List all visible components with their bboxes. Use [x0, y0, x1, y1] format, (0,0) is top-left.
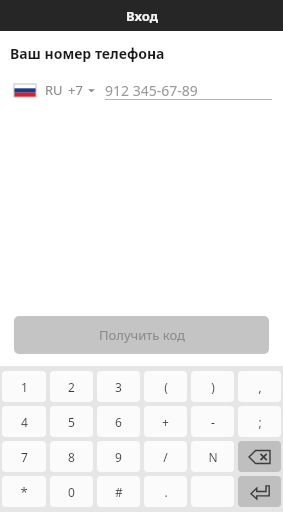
staticText: ,: [258, 378, 262, 396]
staticText: 1: [21, 379, 28, 395]
staticText: 5: [68, 414, 75, 430]
button[interactable]: 0: [50, 476, 93, 507]
staticText: +7: [68, 81, 83, 99]
staticText: 2: [68, 379, 75, 395]
button[interactable]: 9: [97, 441, 140, 472]
button[interactable]: 3: [97, 371, 140, 402]
button[interactable]: 1: [2, 371, 46, 402]
button[interactable]: 8: [50, 441, 93, 472]
button[interactable]: Получить код: [14, 316, 269, 354]
button[interactable]: .: [144, 476, 187, 507]
button[interactable]: *: [2, 476, 46, 507]
button[interactable]: ,: [238, 371, 281, 402]
button[interactable]: ): [191, 371, 234, 402]
staticText: 7: [21, 449, 28, 465]
button[interactable]: #: [97, 476, 140, 507]
staticText: 912 345-67-89: [105, 81, 198, 100]
button[interactable]: 5: [50, 406, 93, 437]
button[interactable]: RU: [14, 81, 97, 99]
staticText: /: [163, 449, 168, 465]
staticText: RU: [45, 81, 63, 99]
staticText: 8: [68, 449, 75, 465]
button[interactable]: Backspace: [238, 441, 281, 472]
button[interactable]: /: [144, 441, 187, 472]
staticText: ): [211, 379, 215, 395]
staticText: Получить код: [99, 326, 185, 344]
staticText: *: [20, 483, 28, 501]
button[interactable]: Enter: [238, 476, 281, 507]
staticText: -: [211, 414, 215, 430]
button[interactable]: ;: [238, 406, 281, 437]
staticText: 9: [115, 449, 122, 465]
button[interactable]: 2: [50, 371, 93, 402]
button[interactable]: -: [191, 406, 234, 437]
staticText: Вход: [126, 7, 158, 25]
button[interactable]: 4: [2, 406, 46, 437]
button[interactable]: +: [144, 406, 187, 437]
staticText: 3: [115, 379, 122, 395]
button[interactable]: 6: [97, 406, 140, 437]
staticText: 0: [68, 484, 75, 500]
staticText: 6: [115, 414, 122, 430]
staticText: ;: [258, 414, 262, 430]
button[interactable]: (: [144, 371, 187, 402]
staticText: Ваш номер телефона: [10, 44, 165, 63]
staticText: +: [162, 414, 169, 430]
staticText: .: [164, 484, 168, 500]
staticText: (: [164, 379, 168, 395]
staticText: N: [208, 449, 218, 465]
staticText: #: [115, 484, 123, 500]
button[interactable]: 7: [2, 441, 46, 472]
button[interactable]: N: [191, 441, 234, 472]
staticText: 4: [21, 414, 28, 430]
